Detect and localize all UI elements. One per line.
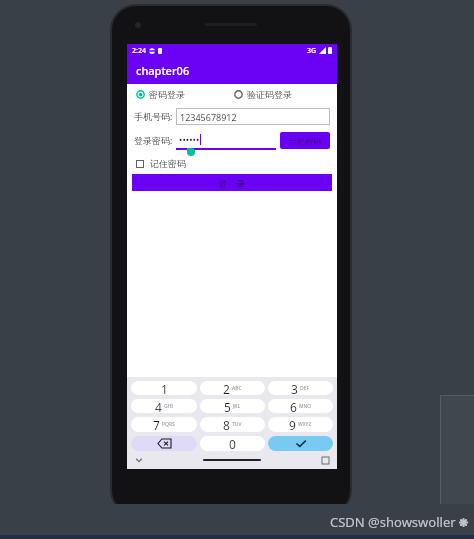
button[interactable]: 7 bbox=[131, 417, 197, 432]
staticText: GHI bbox=[164, 403, 174, 410]
staticText: •••••• bbox=[179, 133, 200, 145]
staticText: DEF bbox=[300, 385, 310, 392]
staticText: 4 bbox=[155, 399, 162, 413]
staticText: 忘记密码 bbox=[289, 136, 321, 146]
staticText: 12345678912 bbox=[180, 111, 237, 123]
staticText: 登 录 bbox=[218, 177, 246, 189]
button[interactable]: 0 bbox=[200, 436, 265, 451]
button[interactable]: 记住密码 bbox=[134, 156, 188, 171]
button[interactable]: 5 bbox=[200, 399, 265, 413]
button[interactable]: 1 bbox=[131, 381, 197, 395]
other: Change keyboard bbox=[322, 457, 329, 464]
button[interactable]: 12345678912 bbox=[176, 108, 330, 125]
staticText: JKL bbox=[233, 403, 241, 410]
staticText: TUV bbox=[232, 421, 242, 428]
staticText: chapter06 bbox=[136, 63, 190, 78]
button[interactable]: 9 bbox=[268, 417, 333, 432]
button[interactable]: 8 bbox=[200, 417, 265, 432]
button[interactable]: 2 bbox=[200, 381, 265, 395]
button[interactable]: Backspace bbox=[131, 436, 197, 451]
button[interactable]: 密码登录 bbox=[134, 87, 187, 102]
button[interactable]: 验证码登录 bbox=[232, 87, 294, 102]
staticText: 3G bbox=[307, 46, 317, 56]
other: Text cursor handle bbox=[187, 148, 195, 156]
staticText: 登录密码: bbox=[134, 134, 173, 146]
staticText: ABC bbox=[232, 385, 242, 392]
staticText: 密码登录 bbox=[149, 89, 185, 100]
staticText: 手机号码: bbox=[134, 110, 173, 122]
staticText: 8 bbox=[223, 417, 230, 432]
button[interactable]: 忘记密码 bbox=[280, 132, 330, 149]
staticText: 6 bbox=[290, 399, 297, 413]
staticText: 2:24 bbox=[132, 46, 146, 56]
staticText: 5 bbox=[224, 399, 231, 413]
staticText: CSDN @showswoller bbox=[330, 513, 456, 531]
staticText: WXYZ bbox=[298, 421, 312, 428]
button[interactable]: Enter bbox=[268, 436, 333, 451]
staticText: 9 bbox=[289, 417, 296, 432]
staticText: MNO bbox=[299, 403, 312, 410]
staticText: 7 bbox=[153, 417, 160, 432]
other: Hide keyboard bbox=[135, 456, 143, 464]
button[interactable]: 3 bbox=[268, 381, 333, 395]
staticText: 记住密码 bbox=[150, 158, 186, 169]
staticText: PQRS bbox=[162, 421, 175, 428]
button[interactable]: 登 录 bbox=[132, 174, 332, 191]
staticText: 2 bbox=[223, 381, 230, 395]
button[interactable]: •••••• bbox=[176, 130, 276, 150]
staticText: 0 bbox=[229, 436, 236, 451]
staticText: 1 bbox=[161, 381, 168, 395]
button[interactable]: 6 bbox=[268, 399, 333, 413]
staticText: 3 bbox=[291, 381, 298, 395]
staticText: 验证码登录 bbox=[247, 89, 292, 100]
button[interactable]: 4 bbox=[131, 399, 197, 413]
